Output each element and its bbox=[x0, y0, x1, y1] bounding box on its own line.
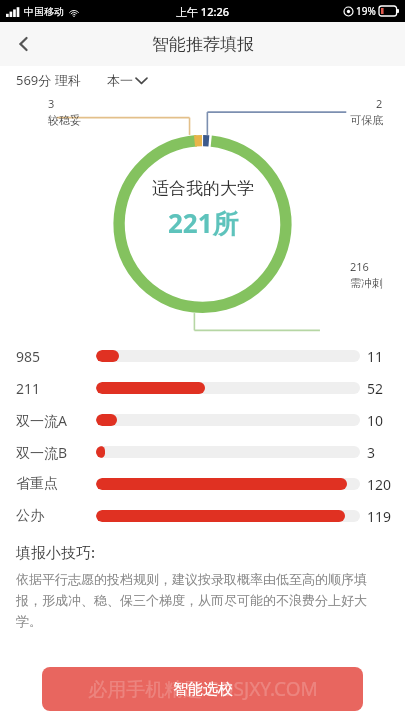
staticText: 19% bbox=[356, 4, 376, 18]
staticText: 985 bbox=[16, 347, 41, 366]
staticText: 221所 bbox=[168, 205, 239, 241]
staticText: 216 bbox=[350, 259, 369, 274]
staticText: 11 bbox=[367, 347, 384, 366]
staticText: 3 bbox=[48, 96, 55, 111]
staticText: 省重点 bbox=[16, 475, 58, 493]
staticText: 上午 12:26 bbox=[176, 4, 230, 19]
staticText: 较稳妥 bbox=[48, 113, 81, 127]
staticText: 需冲刺 bbox=[350, 276, 383, 290]
staticText: 智能推荐填报 bbox=[152, 34, 254, 55]
staticText: 双一流B bbox=[16, 443, 68, 462]
staticText: 依据平行志愿的投档规则，建议按录取概率由低至高的顺序填报，形成冲、稳、保三个梯度… bbox=[16, 571, 389, 630]
staticText: 119 bbox=[367, 507, 392, 526]
button[interactable]: 双一流B bbox=[0, 436, 405, 468]
button[interactable]: 985 bbox=[0, 340, 405, 372]
button[interactable]: Back bbox=[0, 22, 48, 66]
staticText: 智能选校 bbox=[173, 680, 233, 699]
staticText: 填报小技巧: bbox=[16, 542, 96, 562]
button[interactable]: 211 bbox=[0, 372, 405, 404]
button[interactable]: 省重点 bbox=[0, 468, 405, 500]
button[interactable]: 双一流A bbox=[0, 404, 405, 436]
staticText: 必用手机精题·BDSJXY.COM bbox=[88, 676, 318, 702]
staticText: 双一流A bbox=[16, 411, 67, 430]
button[interactable]: 智能选校 bbox=[42, 667, 363, 711]
staticText: 本一 bbox=[107, 72, 133, 88]
button[interactable]: 公办 bbox=[0, 500, 405, 532]
button[interactable]: 本一 bbox=[107, 72, 147, 88]
staticText: 3 bbox=[367, 443, 376, 462]
staticText: 公办 bbox=[16, 507, 44, 525]
staticText: 中国移动 bbox=[24, 5, 64, 18]
staticText: 可保底 bbox=[350, 113, 383, 127]
staticText: 适合我的大学 bbox=[152, 178, 254, 199]
staticText: 10 bbox=[367, 411, 384, 430]
staticText: 52 bbox=[367, 379, 384, 398]
staticText: 569分 理科 bbox=[16, 71, 81, 89]
staticText: 120 bbox=[367, 475, 392, 494]
staticText: 2 bbox=[376, 96, 383, 111]
staticText: 211 bbox=[16, 379, 41, 398]
